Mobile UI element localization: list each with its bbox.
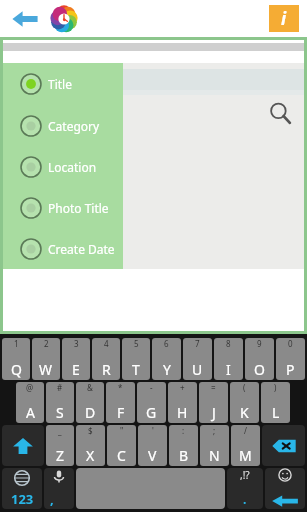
button[interactable]: Backspace — [262, 425, 305, 466]
staticText: ' — [152, 425, 154, 436]
staticText: Title — [48, 76, 72, 92]
staticText: D — [85, 403, 96, 422]
staticText: G — [146, 403, 157, 422]
button[interactable]: : — [169, 425, 198, 466]
staticText: K — [240, 403, 249, 422]
button[interactable]: # — [46, 382, 74, 423]
staticText: V — [148, 446, 157, 465]
button[interactable]: Category — [3, 105, 123, 146]
staticText: H — [177, 403, 188, 422]
staticText: 123 — [11, 490, 34, 508]
staticText: X — [86, 446, 95, 465]
staticText: 7 — [195, 338, 200, 349]
button[interactable]: Voice input — [44, 468, 74, 509]
staticText: * — [118, 382, 123, 393]
staticText: ) — [274, 382, 277, 393]
button[interactable]: 1 — [2, 338, 30, 380]
button[interactable]: / — [231, 425, 260, 466]
button[interactable]: Space — [76, 468, 225, 509]
staticText: ; — [213, 425, 216, 436]
staticText: M — [239, 446, 252, 465]
button[interactable]: & — [76, 382, 104, 423]
staticText: - — [150, 382, 153, 393]
button[interactable]: Back — [10, 4, 40, 34]
button[interactable]: ; — [200, 425, 229, 466]
staticText: Category — [48, 118, 100, 134]
staticText: i — [281, 7, 287, 30]
button[interactable]: Title — [3, 63, 123, 105]
staticText: 0 — [288, 338, 293, 349]
staticText: C — [117, 446, 126, 465]
button[interactable]: 2 — [32, 338, 60, 380]
button[interactable]: 3 — [62, 338, 90, 380]
button[interactable]: * — [106, 382, 135, 423]
staticText: Create Date — [48, 241, 115, 257]
staticText: ( — [243, 382, 246, 393]
staticText: N — [209, 446, 220, 465]
staticText: , — [50, 490, 54, 508]
staticText: I — [226, 360, 231, 379]
button[interactable]: $ — [76, 425, 105, 466]
staticText: + — [180, 382, 185, 393]
button[interactable]: = — [199, 382, 228, 423]
staticText: " — [120, 425, 124, 436]
button[interactable]: Enter — [265, 468, 305, 509]
staticText: P — [286, 360, 295, 379]
staticText: R — [102, 360, 111, 379]
staticText: J — [212, 403, 216, 422]
button[interactable]: 4 — [92, 338, 120, 380]
staticText: $ — [88, 425, 93, 436]
button[interactable]: ( — [230, 382, 259, 423]
button[interactable]: 8 — [214, 338, 243, 380]
staticText: _ — [58, 425, 62, 436]
button[interactable]: Location — [3, 146, 123, 187]
staticText: A — [26, 403, 35, 422]
staticText: 4 — [104, 338, 109, 349]
staticText: 1 — [14, 338, 19, 349]
button[interactable]: Search — [268, 101, 294, 127]
staticText: 6 — [164, 338, 169, 349]
staticText: U — [192, 360, 203, 379]
staticText: L — [272, 403, 280, 422]
staticText: : — [182, 425, 185, 436]
button[interactable]: Create Date — [3, 228, 123, 269]
button[interactable]: Photo Title — [3, 187, 123, 228]
button[interactable]: Numbers — [2, 468, 42, 509]
button[interactable]: ' — [138, 425, 167, 466]
staticText: Location — [48, 159, 97, 175]
button[interactable]: Punctuation — [227, 468, 263, 509]
staticText: E — [72, 360, 80, 379]
button[interactable]: ) — [261, 382, 290, 423]
button[interactable]: Info — [269, 5, 299, 32]
button[interactable]: 0 — [276, 338, 305, 380]
staticText: B — [179, 446, 189, 465]
button[interactable]: @ — [16, 382, 44, 423]
button[interactable]: 6 — [152, 338, 181, 380]
staticText: ,!? — [240, 468, 250, 482]
button[interactable]: - — [137, 382, 166, 423]
staticText: S — [56, 403, 64, 422]
button[interactable]: + — [168, 382, 197, 423]
staticText: = — [211, 382, 216, 393]
staticText: Z — [56, 446, 65, 465]
staticText: 2 — [44, 338, 49, 349]
staticText: & — [87, 382, 93, 393]
staticText: Q — [11, 360, 22, 379]
staticText: 5 — [134, 338, 139, 349]
staticText: W — [39, 360, 53, 379]
button[interactable]: App logo — [50, 5, 78, 33]
button[interactable]: _ — [46, 425, 74, 466]
staticText: 8 — [226, 338, 231, 349]
staticText: T — [132, 360, 140, 379]
staticText: Y — [163, 360, 171, 379]
button[interactable]: Shift — [2, 425, 44, 466]
staticText: F — [117, 403, 125, 422]
button[interactable]: " — [107, 425, 136, 466]
button[interactable]: 9 — [245, 338, 274, 380]
button[interactable]: 5 — [122, 338, 150, 380]
staticText: / — [244, 425, 247, 436]
staticText: O — [254, 360, 265, 379]
staticText: 9 — [257, 338, 262, 349]
button[interactable]: 7 — [183, 338, 212, 380]
